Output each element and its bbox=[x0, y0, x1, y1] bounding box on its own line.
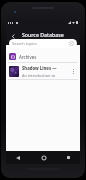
button[interactable]: Back bbox=[12, 152, 23, 163]
button[interactable]: Shadow Lines — Building a SQL Pipeline bbox=[6, 63, 80, 79]
staticText: Archives bbox=[19, 54, 37, 60]
button[interactable]: Recent apps bbox=[63, 152, 74, 163]
staticText: Source Database bbox=[22, 31, 64, 38]
staticText: Shadow Lines — Building a SQL Pipeline bbox=[22, 65, 69, 71]
staticText: Search topics bbox=[12, 41, 37, 46]
button[interactable]: Home bbox=[38, 152, 49, 163]
other: Clear search bbox=[69, 41, 74, 46]
staticText: An introduction to indexes, joins … bbox=[22, 73, 69, 78]
button[interactable]: More options bbox=[69, 67, 77, 75]
button[interactable]: Archives bbox=[6, 51, 80, 62]
button[interactable]: Back bbox=[7, 30, 19, 42]
button[interactable]: Search topics bbox=[9, 39, 77, 48]
